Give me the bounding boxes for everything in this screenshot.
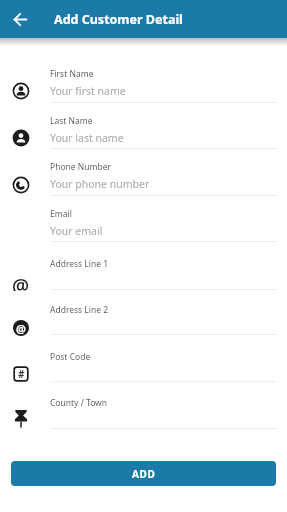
button[interactable]: Address Line 2 (44, 304, 277, 336)
button[interactable]: ADD (11, 461, 276, 486)
staticText: Last Name (50, 115, 93, 127)
button[interactable]: Email (44, 208, 277, 243)
button[interactable]: County / Town (44, 397, 277, 430)
staticText: Post Code (50, 351, 91, 363)
staticText: @ (16, 321, 26, 336)
button[interactable]: Last Name (44, 115, 277, 150)
staticText: Your email (50, 224, 103, 238)
staticText: Your first name (50, 84, 126, 98)
staticText: ADD (132, 467, 156, 481)
staticText: @ (12, 273, 30, 291)
staticText: Address Line 2 (50, 304, 109, 316)
staticText: First Name (50, 68, 94, 80)
button[interactable]: Phone Number (44, 161, 277, 197)
button[interactable]: Address Line 1 (44, 258, 277, 291)
staticText: Phone Number (50, 161, 111, 173)
staticText: Add Customer Detail (54, 11, 183, 28)
button[interactable]: First Name (44, 68, 277, 104)
staticText: Email (50, 208, 72, 220)
staticText: # (18, 367, 25, 381)
staticText: County / Town (50, 397, 108, 409)
button[interactable] (6, 5, 34, 33)
staticText: Your last name (50, 131, 124, 145)
staticText: Address Line 1 (50, 258, 109, 270)
button[interactable]: Post Code (44, 351, 277, 383)
staticText: Your phone number (50, 177, 150, 191)
